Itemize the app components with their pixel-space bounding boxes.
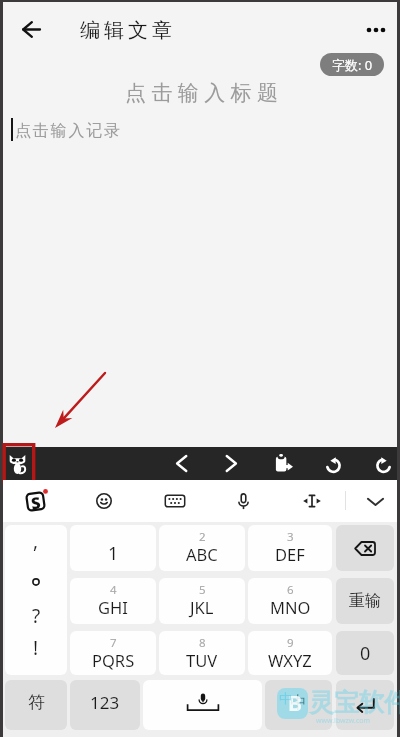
staticText: 3 — [287, 529, 294, 545]
staticText: 点击输入记录 — [15, 121, 122, 141]
staticText: ABC — [186, 543, 218, 565]
button[interactable]: Sogou input method — [11, 480, 59, 522]
button[interactable]: 3 — [248, 525, 332, 571]
button[interactable]: Redo — [366, 447, 400, 480]
staticText: ? — [32, 603, 41, 629]
button[interactable]: 点击输入标题 — [3, 78, 397, 108]
staticText: 8 — [199, 635, 206, 651]
staticText: WXYZ — [268, 649, 312, 671]
staticText: 点击输入标题 — [125, 80, 284, 106]
button[interactable]: 8 — [159, 631, 245, 675]
button[interactable]: 字数: 0 — [320, 53, 384, 76]
staticText: 1 — [108, 541, 119, 566]
button[interactable]: 123 — [70, 680, 140, 730]
staticText: 2 — [199, 529, 206, 545]
button[interactable]: Sogou cat assistant — [3, 447, 35, 480]
staticText: www.lbwzw.com — [316, 716, 371, 726]
button[interactable]: 2 — [159, 525, 245, 571]
button[interactable]: 9 — [248, 631, 332, 675]
button[interactable]: 4 — [70, 578, 156, 624]
button[interactable]: 中 — [265, 680, 332, 730]
staticText: 9 — [287, 635, 294, 651]
button[interactable]: Move cursor left — [163, 447, 199, 480]
staticText: ! — [33, 635, 39, 661]
button[interactable]: Backspace — [336, 525, 394, 571]
button[interactable]: Enter — [336, 680, 394, 730]
staticText: 7 — [110, 635, 117, 651]
staticText: MNO — [270, 596, 311, 618]
staticText: 6 — [287, 582, 294, 598]
button[interactable]: 0 — [336, 631, 394, 675]
button[interactable]: 6 — [248, 578, 332, 624]
staticText: 符 — [28, 692, 45, 713]
staticText: 4 — [110, 582, 117, 598]
button[interactable]: 5 — [159, 578, 245, 624]
button[interactable]: 符 — [5, 680, 67, 730]
staticText: 重输 — [349, 591, 381, 611]
button[interactable]: Space — [143, 680, 262, 730]
staticText: 123 — [90, 691, 120, 714]
staticText: TUV — [186, 649, 218, 671]
button[interactable]: Emoji — [80, 480, 128, 522]
button[interactable]: Back — [7, 0, 55, 58]
staticText: 灵宝软件 — [309, 687, 400, 718]
staticText: GHI — [98, 596, 128, 618]
staticText: 0 — [360, 641, 371, 666]
button[interactable]: Punctuation — [5, 525, 67, 675]
button[interactable]: More options — [352, 1, 400, 59]
button[interactable]: 1 — [70, 525, 156, 571]
staticText: 中 — [279, 690, 292, 706]
button[interactable]: Keyboard layout — [151, 480, 199, 522]
staticText: DEF — [275, 543, 305, 565]
button[interactable]: Undo — [315, 447, 351, 480]
staticText: , — [33, 528, 39, 554]
staticText: JKL — [190, 596, 214, 618]
button[interactable]: Move cursor right — [213, 447, 249, 480]
button[interactable]: 7 — [70, 631, 156, 675]
staticText: S — [30, 491, 42, 511]
button[interactable]: Hide keyboard — [351, 480, 399, 522]
staticText: PQRS — [92, 649, 135, 671]
button[interactable]: Paste — [265, 447, 301, 480]
staticText: 5 — [199, 582, 206, 598]
staticText: 编辑文章 — [78, 18, 174, 43]
button[interactable]: 点击输入记录 — [3, 116, 397, 146]
staticText: 中 — [290, 692, 307, 713]
staticText: 字数: 0 — [332, 56, 373, 74]
staticText: B — [288, 689, 302, 718]
button[interactable]: Voice input — [219, 480, 267, 522]
button[interactable]: 重输 — [336, 578, 394, 624]
button[interactable]: Move cursor — [288, 480, 336, 522]
